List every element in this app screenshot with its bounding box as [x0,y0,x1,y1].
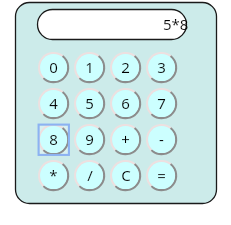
button[interactable]: 5*8 [36,8,188,41]
staticText: 3 [157,57,166,77]
staticText: 1 [85,57,94,77]
staticText: + [121,129,130,149]
button[interactable]: 7 [146,88,177,119]
button[interactable]: * [38,160,69,191]
staticText: 8 [49,129,58,149]
button[interactable]: 8 [38,124,69,155]
button[interactable]: 3 [146,52,177,83]
button[interactable]: C [110,160,141,191]
staticText: = [157,165,166,185]
button[interactable]: 9 [74,124,105,155]
staticText: 6 [121,93,130,113]
button[interactable]: - [146,124,177,155]
staticText: 7 [157,93,166,113]
staticText: 5*8 [163,14,189,34]
staticText: - [159,129,164,149]
button[interactable]: / [74,160,105,191]
button[interactable]: 5 [74,88,105,119]
button[interactable]: 0 [38,52,69,83]
staticText: 4 [49,93,58,113]
staticText: 2 [121,57,130,77]
staticText: * [49,165,58,185]
staticText: 0 [49,57,58,77]
button[interactable]: = [146,160,177,191]
staticText: 9 [85,129,94,149]
button[interactable]: 2 [110,52,141,83]
staticText: C [121,165,131,185]
staticText: 5 [85,93,94,113]
button[interactable]: 6 [110,88,141,119]
button[interactable]: 4 [38,88,69,119]
button[interactable]: 1 [74,52,105,83]
staticText: / [87,165,93,185]
button[interactable]: + [110,124,141,155]
